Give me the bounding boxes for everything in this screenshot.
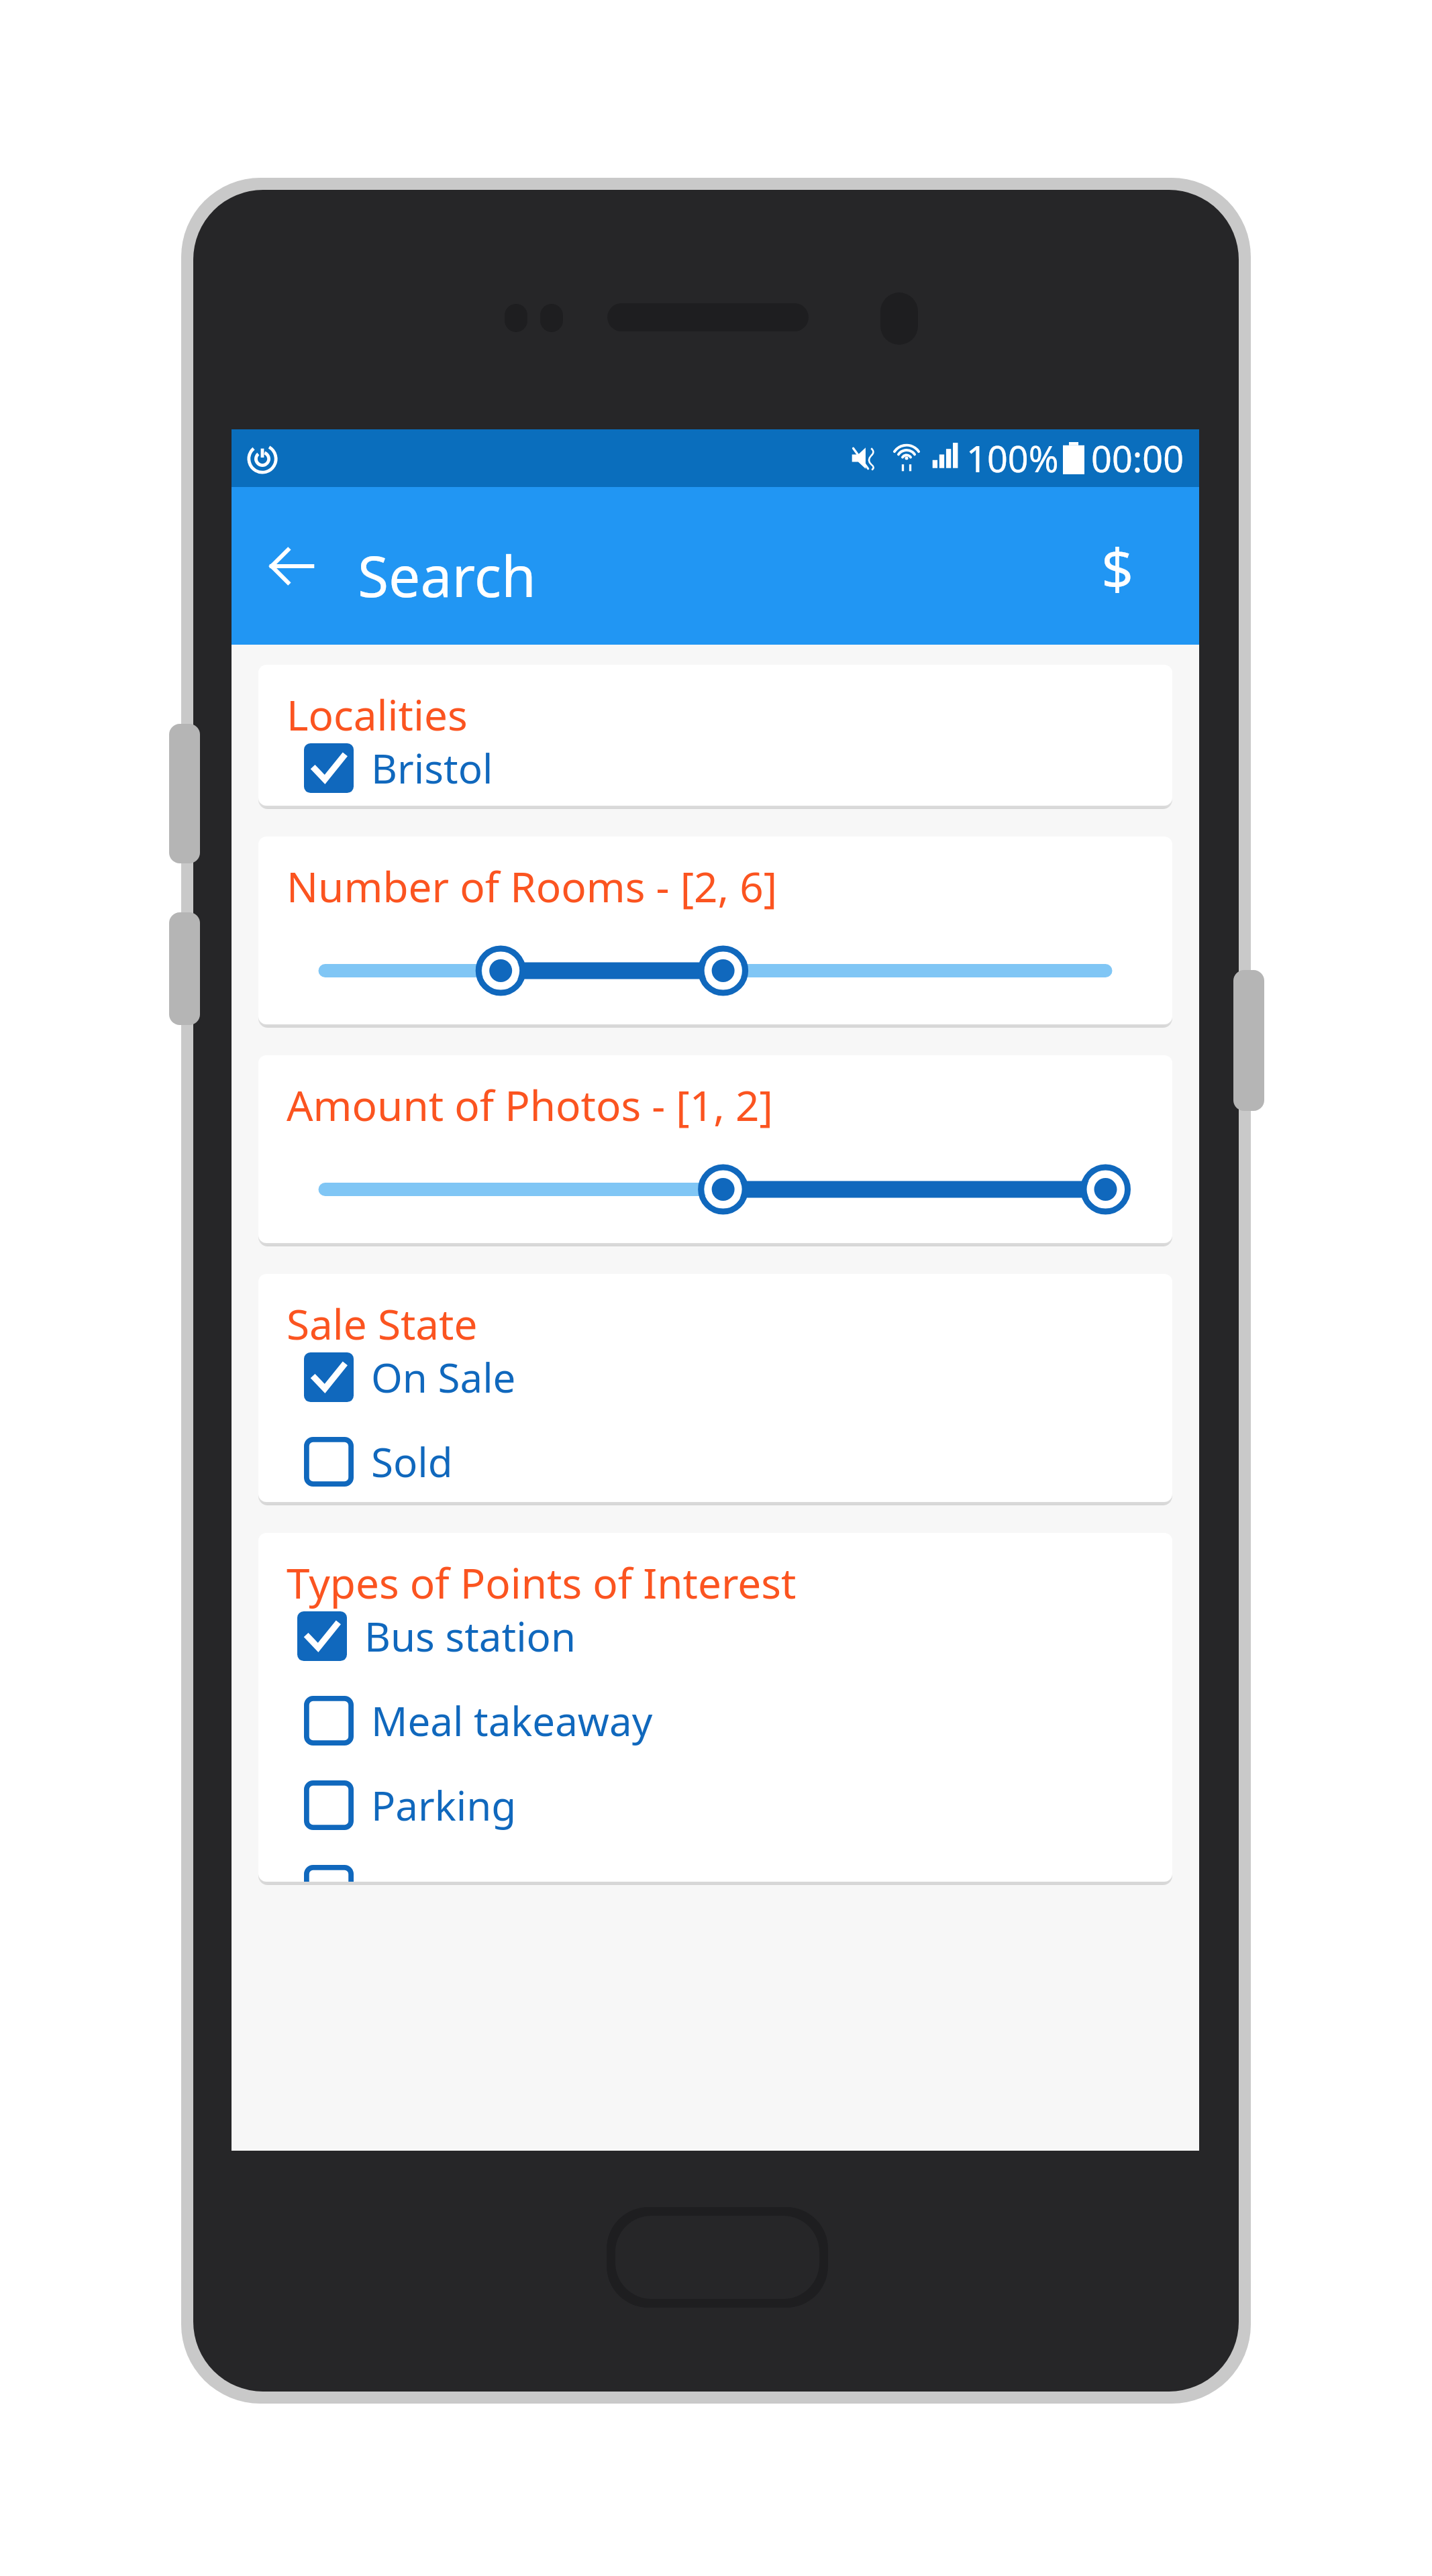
- staticText: Search: [358, 537, 536, 613]
- button[interactable]: Parking: [304, 1772, 517, 1839]
- button[interactable]: Bristol: [304, 735, 493, 802]
- button[interactable]: Range slider: [258, 1149, 1172, 1230]
- button[interactable]: Number of Rooms - [2, 6]: [258, 837, 1172, 1024]
- staticText: Number of Rooms - [2, 6]: [287, 858, 778, 914]
- staticText: Types of Points of Interest: [287, 1554, 797, 1611]
- button[interactable]: Types of Points of Interest: [258, 1533, 1172, 1882]
- button[interactable]: Range slider: [258, 930, 1172, 1011]
- staticText: Meal takeaway: [371, 1693, 653, 1748]
- button[interactable]: Price filter: [1078, 529, 1156, 606]
- staticText: Sale State: [287, 1295, 478, 1352]
- button[interactable]: Amount of Photos - [1, 2]: [258, 1055, 1172, 1243]
- button[interactable]: Meal takeaway: [304, 1687, 653, 1754]
- staticText: Sold: [371, 1434, 453, 1489]
- button[interactable]: Localities: [258, 665, 1172, 806]
- button[interactable]: Sale State: [258, 1274, 1172, 1502]
- staticText: Bristol: [371, 741, 493, 796]
- button[interactable]: Back: [253, 527, 331, 605]
- staticText: Localities: [287, 686, 468, 743]
- staticText: $: [1101, 529, 1134, 606]
- staticText: On Sale: [371, 1350, 516, 1405]
- staticText: Amount of Photos - [1, 2]: [287, 1077, 773, 1133]
- button[interactable]: Sold: [304, 1428, 453, 1495]
- staticText: 00:00: [1091, 433, 1184, 483]
- button[interactable]: On Sale: [304, 1344, 516, 1411]
- staticText: Parking: [371, 1778, 517, 1833]
- button[interactable]: [304, 1856, 371, 1882]
- staticText: Bus station: [364, 1609, 576, 1664]
- button[interactable]: Bus station: [297, 1603, 576, 1670]
- staticText: 100%: [966, 433, 1059, 483]
